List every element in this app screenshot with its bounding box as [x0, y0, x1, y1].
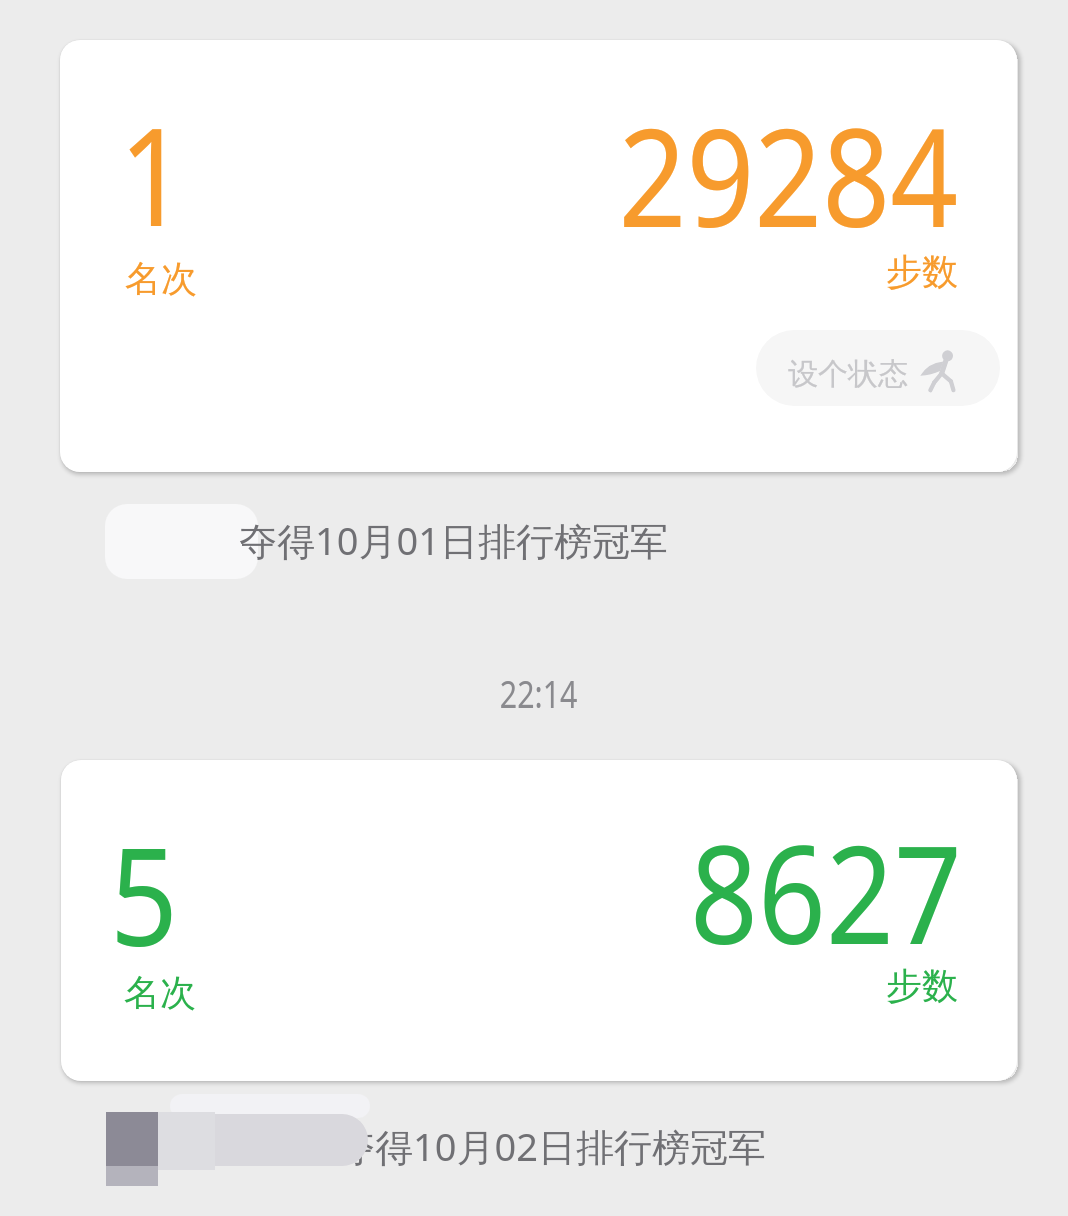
staticText: 1	[119, 82, 188, 266]
staticText: 夺得10月02日排行榜冠军	[337, 1120, 766, 1172]
staticText: 名次	[124, 970, 196, 1015]
staticText: 步数	[886, 963, 958, 1008]
staticText: 29284	[618, 83, 959, 267]
staticText: 5	[110, 802, 179, 986]
staticText: 8627	[690, 800, 962, 984]
staticText: 步数	[886, 249, 958, 294]
staticText: 名次	[125, 256, 197, 301]
staticText: 设个状态	[788, 355, 908, 393]
button[interactable]: 1	[60, 40, 1017, 472]
staticText: 夺得10月01日排行榜冠军	[239, 514, 668, 566]
button[interactable]: 5	[61, 760, 1017, 1081]
button[interactable]: 设个状态	[756, 330, 1000, 406]
staticText: 22:14	[500, 667, 578, 719]
